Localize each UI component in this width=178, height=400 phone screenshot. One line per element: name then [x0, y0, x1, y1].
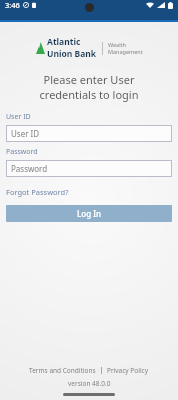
button[interactable]: Password [6, 160, 172, 177]
staticText: Password [11, 163, 48, 174]
staticText: Wealth [108, 41, 126, 48]
staticText: version 48.0.0 [68, 379, 111, 388]
staticText: User ID [6, 112, 31, 122]
other: Home [63, 393, 115, 396]
staticText: Forgot Password? [6, 187, 69, 197]
button[interactable]: Terms and Conditions [28, 365, 97, 376]
staticText: Please enter User credentials to login [16, 72, 162, 102]
button[interactable]: Log In [6, 205, 172, 222]
staticText: Atlantic [47, 36, 81, 48]
staticText: User ID [11, 128, 40, 139]
staticText: Management [108, 48, 143, 55]
staticText: 3:46 [5, 0, 20, 10]
button[interactable]: User ID [6, 125, 172, 142]
staticText: Log In [77, 208, 102, 219]
staticText: Password [6, 147, 38, 157]
button[interactable]: Forgot Password? [6, 186, 69, 198]
staticText: Union Bank [47, 48, 97, 60]
staticText: Privacy Policy [107, 366, 149, 375]
button[interactable]: Privacy Policy [106, 365, 150, 376]
staticText: Terms and Conditions [29, 366, 96, 375]
